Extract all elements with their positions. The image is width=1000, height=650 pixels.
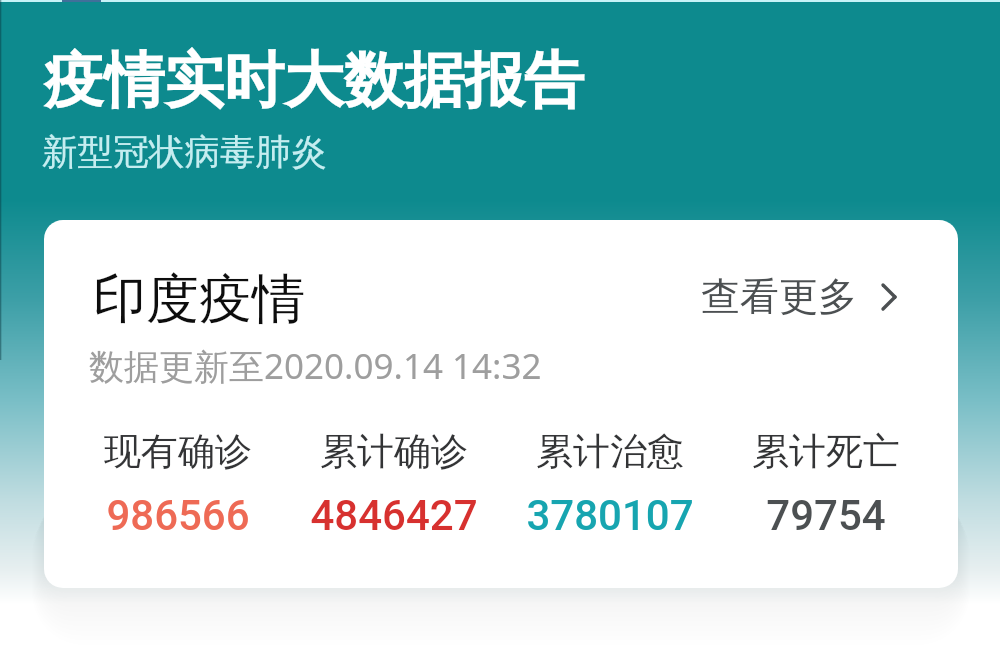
staticText: 印度疫情	[93, 266, 305, 333]
staticText: 疫情实时大数据报告	[44, 43, 584, 119]
button[interactable]: 印度疫情	[44, 220, 958, 588]
button[interactable]: 累计治愈	[502, 428, 718, 540]
staticText: 新型冠状病毒肺炎	[42, 130, 327, 175]
staticText: 986566	[106, 491, 250, 540]
staticText: 数据更新至2020.09.14 14:32	[89, 342, 542, 390]
staticText: 查看更多	[701, 272, 857, 321]
button[interactable]: 现有确诊	[70, 428, 286, 540]
staticText: 现有确诊	[104, 428, 252, 475]
staticText: 累计确诊	[320, 428, 468, 475]
staticText: 3780107	[526, 491, 694, 540]
button[interactable]: 累计死亡	[718, 428, 934, 540]
button[interactable]: 累计确诊	[286, 428, 502, 540]
staticText: 累计治愈	[536, 428, 684, 475]
staticText: 4846427	[310, 491, 478, 540]
staticText: 79754	[766, 491, 886, 540]
staticText: 累计死亡	[752, 428, 900, 475]
other: 查看更多	[881, 283, 897, 311]
button[interactable]: 查看更多	[681, 256, 917, 337]
